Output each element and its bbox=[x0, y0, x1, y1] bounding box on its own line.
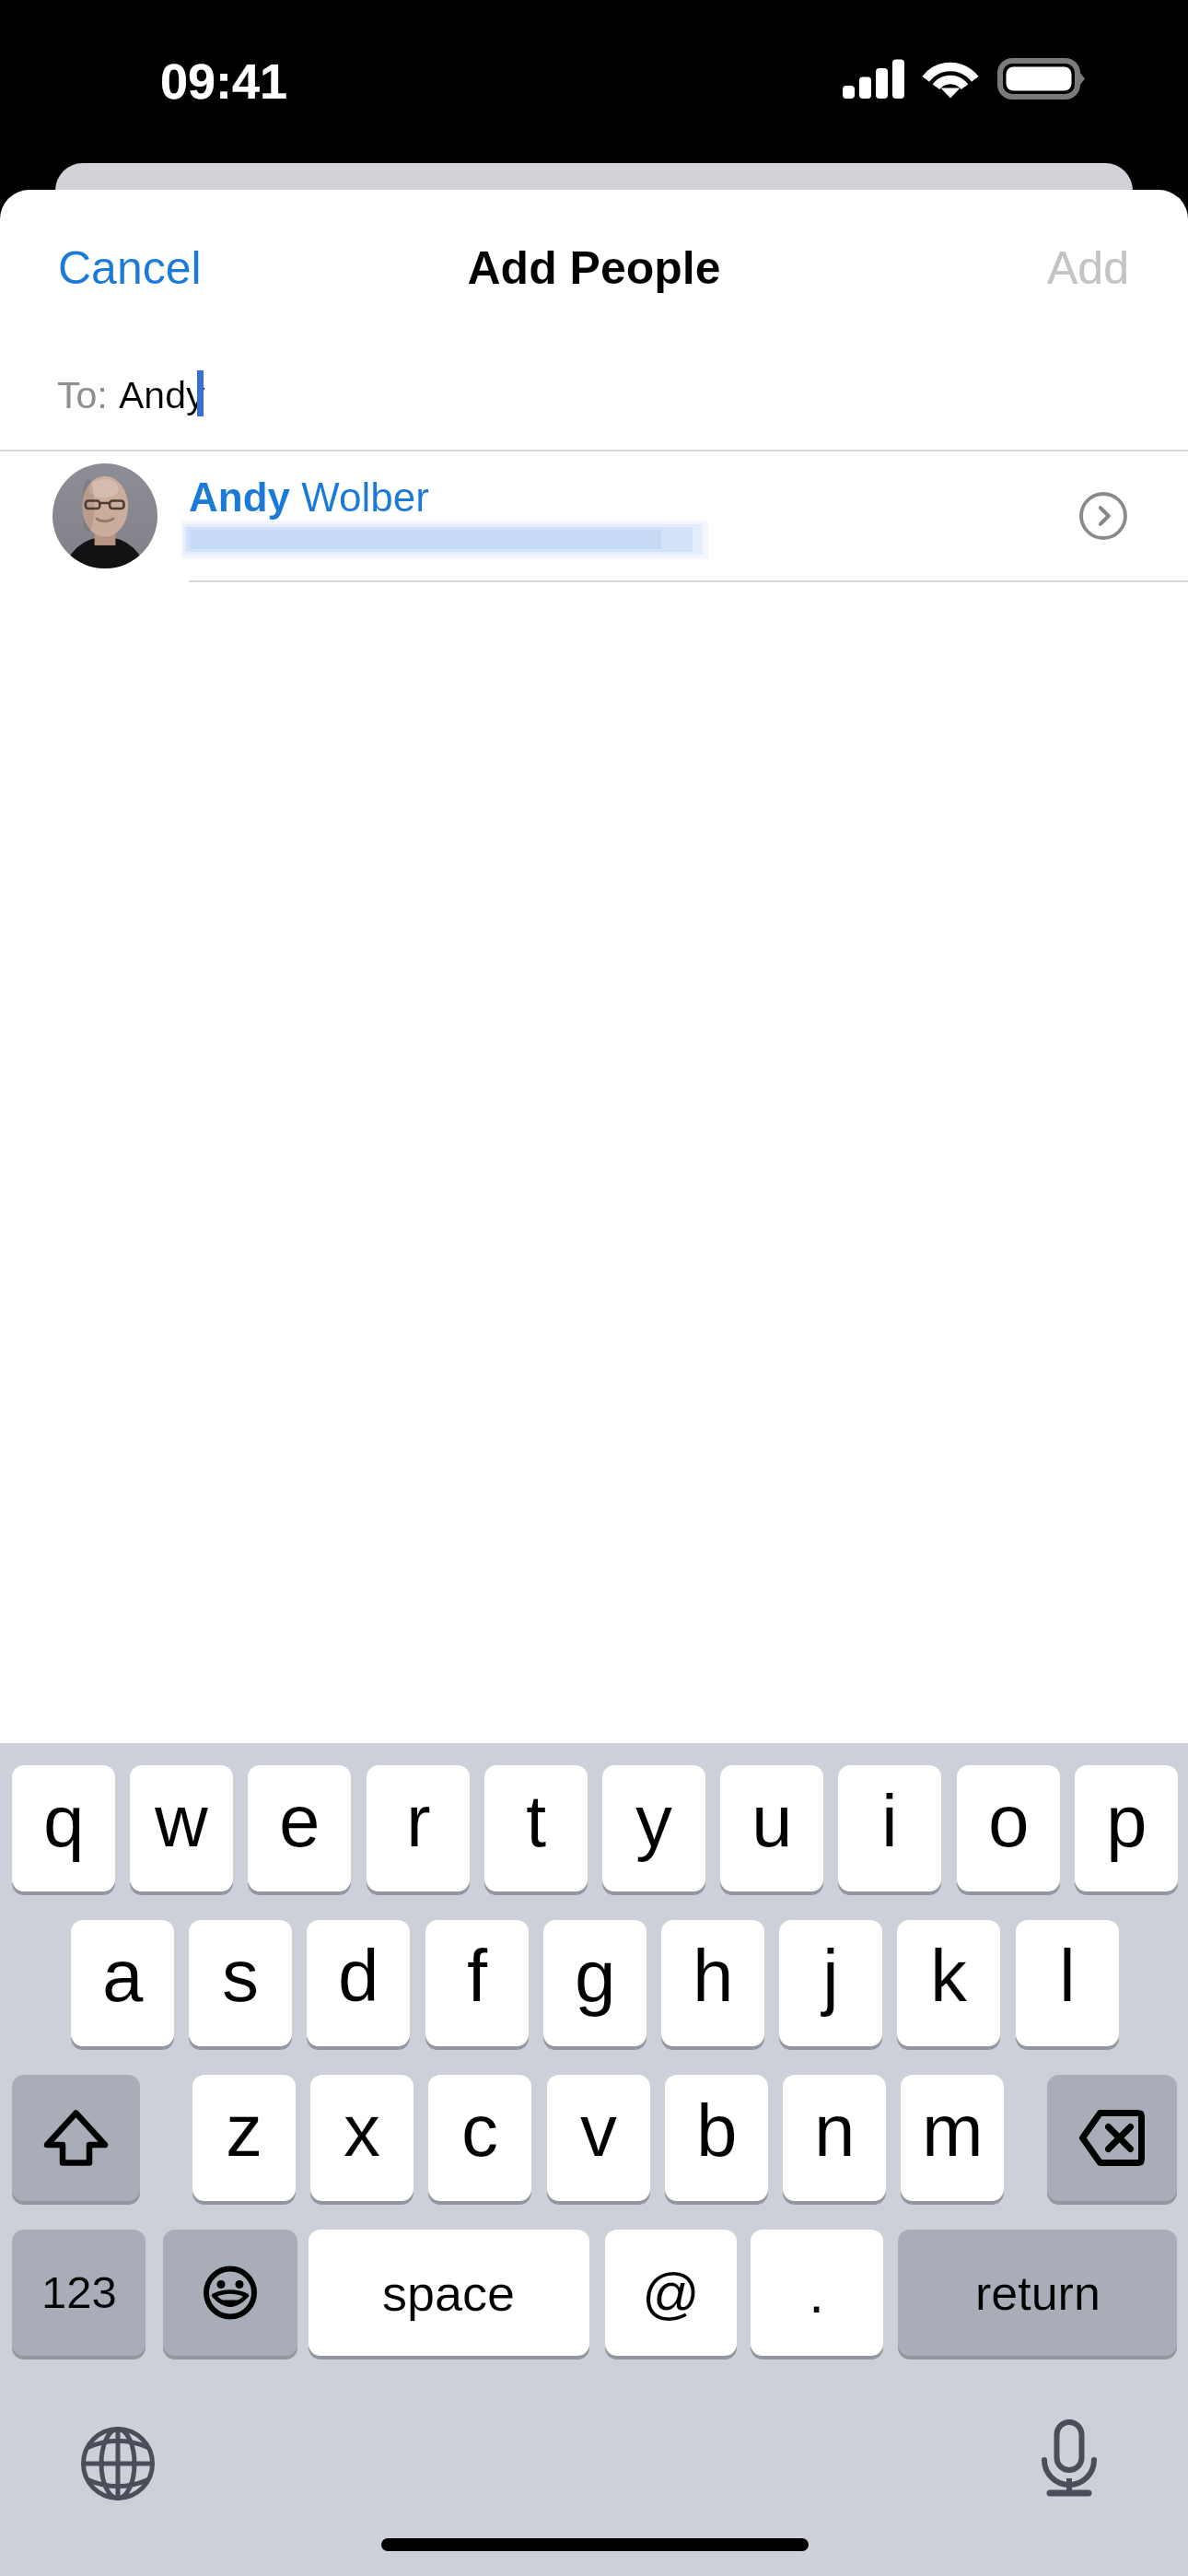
button[interactable]: More info bbox=[1079, 492, 1127, 540]
button[interactable]: i bbox=[838, 1765, 941, 1891]
button[interactable]: r bbox=[367, 1765, 470, 1891]
button[interactable]: u bbox=[720, 1765, 823, 1891]
button[interactable]: z bbox=[192, 2075, 296, 2201]
button[interactable]: @ bbox=[605, 2230, 737, 2356]
button[interactable]: m bbox=[901, 2075, 1004, 2201]
button[interactable]: p bbox=[1075, 1765, 1178, 1891]
staticText: q bbox=[43, 1780, 85, 1862]
staticText: Add bbox=[1047, 242, 1129, 294]
staticText: d bbox=[338, 1935, 379, 2017]
button[interactable]: return bbox=[898, 2230, 1177, 2356]
staticText: x bbox=[344, 2090, 380, 2172]
staticText: Andy bbox=[119, 374, 205, 416]
button[interactable]: x bbox=[310, 2075, 413, 2201]
button[interactable]: Shift bbox=[12, 2075, 140, 2201]
staticText: h bbox=[693, 1935, 734, 2017]
staticText: f bbox=[467, 1935, 488, 2017]
button[interactable]: w bbox=[130, 1765, 233, 1891]
staticText: 09:41 bbox=[160, 53, 288, 109]
button[interactable]: o bbox=[957, 1765, 1060, 1891]
button[interactable]: h bbox=[661, 1920, 764, 2046]
button[interactable]: s bbox=[189, 1920, 292, 2046]
button[interactable]: n bbox=[783, 2075, 886, 2201]
button[interactable]: k bbox=[897, 1920, 1000, 2046]
staticText: n bbox=[814, 2090, 856, 2172]
button[interactable]: t bbox=[484, 1765, 588, 1891]
staticText: l bbox=[1059, 1935, 1076, 2017]
staticText: t bbox=[526, 1780, 547, 1862]
button[interactable]: Switch keyboard bbox=[81, 2427, 155, 2500]
button[interactable]: Backspace bbox=[1047, 2075, 1177, 2201]
staticText: v bbox=[580, 2090, 617, 2172]
button[interactable]: g bbox=[543, 1920, 646, 2046]
button[interactable]: b bbox=[665, 2075, 768, 2201]
staticText: Andy Wolber bbox=[189, 474, 429, 520]
button[interactable]: Dictate bbox=[1033, 2419, 1105, 2504]
button[interactable]: c bbox=[428, 2075, 531, 2201]
staticText: s bbox=[222, 1935, 259, 2017]
staticText: k bbox=[930, 1935, 967, 2017]
button[interactable]: j bbox=[779, 1920, 882, 2046]
button[interactable]: Cancel bbox=[58, 242, 202, 294]
button[interactable]: space bbox=[309, 2230, 589, 2356]
staticText: space bbox=[382, 2266, 516, 2321]
staticText: o bbox=[988, 1780, 1030, 1862]
button[interactable]: d bbox=[307, 1920, 410, 2046]
button[interactable]: l bbox=[1016, 1920, 1119, 2046]
staticText: r bbox=[406, 1780, 431, 1862]
button[interactable]: Add bbox=[1047, 242, 1129, 294]
staticText: @ bbox=[642, 2261, 700, 2324]
staticText: m bbox=[922, 2090, 984, 2172]
staticText: 123 bbox=[41, 2267, 117, 2318]
button[interactable]: y bbox=[602, 1765, 705, 1891]
staticText: return bbox=[975, 2266, 1101, 2320]
button[interactable]: Emoji bbox=[163, 2230, 297, 2356]
button[interactable]: . bbox=[751, 2230, 883, 2356]
staticText: w bbox=[155, 1780, 208, 1862]
staticText: Cancel bbox=[58, 242, 202, 294]
staticText: i bbox=[881, 1780, 898, 1862]
button[interactable]: e bbox=[248, 1765, 351, 1891]
button[interactable]: q bbox=[12, 1765, 115, 1891]
staticText: e bbox=[279, 1780, 320, 1862]
staticText: a bbox=[102, 1935, 144, 2017]
button[interactable]: a bbox=[71, 1920, 174, 2046]
staticText: z bbox=[226, 2090, 262, 2172]
staticText: . bbox=[809, 2261, 825, 2324]
button[interactable]: 123 bbox=[12, 2230, 146, 2356]
staticText: c bbox=[461, 2090, 498, 2172]
button[interactable]: Andy Wolber bbox=[0, 451, 1188, 580]
staticText: b bbox=[696, 2090, 738, 2172]
button[interactable]: v bbox=[547, 2075, 650, 2201]
staticText: Add People bbox=[0, 242, 1188, 294]
staticText: p bbox=[1106, 1780, 1147, 1862]
staticText: j bbox=[822, 1935, 839, 2017]
staticText: y bbox=[635, 1780, 672, 1862]
staticText: g bbox=[575, 1935, 616, 2017]
staticText: To: bbox=[57, 374, 108, 416]
staticText: u bbox=[751, 1780, 793, 1862]
button[interactable]: f bbox=[425, 1920, 529, 2046]
